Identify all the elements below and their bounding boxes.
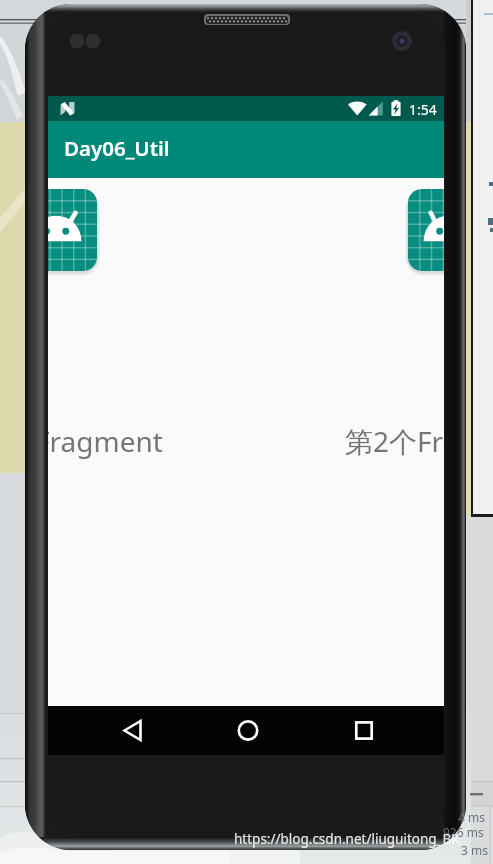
button[interactable]: Recent apps	[335, 706, 393, 755]
staticText: 第1个Fragment	[48, 422, 163, 460]
staticText: https://blog.csdn.net/liuguitong_BK	[234, 830, 460, 848]
staticText: 926 ms	[443, 824, 484, 840]
staticText: 4 ms	[458, 809, 485, 825]
staticText: 1:54	[409, 100, 437, 119]
staticText: Day06_Util	[64, 134, 170, 162]
button[interactable]	[408, 189, 444, 271]
button[interactable]: Back	[104, 706, 162, 755]
button[interactable]: Home	[219, 706, 277, 755]
button[interactable]	[48, 189, 97, 271]
staticText: 3 ms	[461, 842, 488, 858]
staticText: 第2个Fragment	[345, 422, 444, 460]
